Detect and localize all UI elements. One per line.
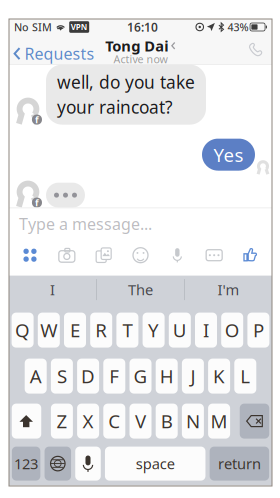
staticText: D	[81, 364, 95, 388]
button[interactable]: Stickers	[127, 242, 153, 268]
button[interactable]: Y	[143, 313, 165, 348]
button[interactable]: More options	[201, 242, 227, 268]
button[interactable]: Camera	[54, 242, 80, 268]
staticText: Active now	[113, 52, 167, 66]
staticText: B	[161, 409, 173, 433]
staticText: Z	[56, 409, 67, 433]
button[interactable]: Q	[12, 313, 34, 348]
button[interactable]: B	[156, 404, 178, 439]
staticText: S	[57, 364, 67, 388]
button[interactable]: I	[9, 276, 96, 304]
staticText: Requests	[24, 43, 94, 64]
button[interactable]: A	[25, 359, 47, 394]
staticText: The	[128, 280, 153, 299]
staticText: P	[253, 318, 264, 342]
button[interactable]: space	[105, 447, 205, 481]
staticText: G	[133, 364, 147, 388]
button[interactable]: Type a message...	[9, 208, 272, 239]
button[interactable]: Z	[51, 404, 73, 439]
button[interactable]: E	[64, 313, 86, 348]
button[interactable]: R	[90, 313, 112, 348]
staticText: I'm	[217, 280, 239, 299]
staticText: Y	[148, 318, 159, 342]
staticText: K	[213, 364, 225, 388]
staticText: M	[211, 409, 228, 433]
button[interactable]: L	[234, 359, 256, 394]
button[interactable]: Voice message	[164, 242, 190, 268]
staticText: N	[186, 409, 200, 433]
button[interactable]: K	[208, 359, 230, 394]
staticText: T	[122, 318, 132, 342]
button[interactable]: M	[208, 404, 230, 439]
button[interactable]: The	[97, 276, 184, 304]
button[interactable]: 123	[12, 447, 40, 481]
staticText: 123	[14, 454, 38, 473]
button[interactable]: D	[77, 359, 99, 394]
staticText: return	[218, 454, 261, 473]
button[interactable]: I	[195, 313, 217, 348]
staticText: Tong Dai	[105, 36, 168, 55]
staticText: I	[50, 280, 55, 299]
button[interactable]: N	[182, 404, 204, 439]
staticText: well, do you take	[57, 71, 195, 94]
button[interactable]: W	[38, 313, 60, 348]
button[interactable]: V	[129, 404, 151, 439]
staticText: L	[240, 364, 250, 388]
button[interactable]: Dictation	[75, 447, 101, 481]
button[interactable]: T	[116, 313, 138, 348]
staticText: Q	[15, 318, 30, 342]
staticText: W	[40, 318, 57, 342]
button[interactable]: Next keyboard	[44, 447, 71, 481]
staticText: Type a message...	[19, 213, 152, 234]
staticText: H	[160, 364, 174, 388]
button[interactable]: Call	[240, 35, 272, 64]
button[interactable]: H	[156, 359, 178, 394]
button[interactable]: Like	[238, 242, 264, 268]
button[interactable]: Shift	[12, 404, 41, 439]
button[interactable]: U	[169, 313, 191, 348]
staticText: f	[35, 196, 39, 209]
staticText: U	[173, 318, 187, 342]
button[interactable]: return	[210, 447, 269, 481]
staticText: No SIM	[14, 20, 52, 34]
staticText: X	[83, 409, 94, 433]
button[interactable]: S	[51, 359, 73, 394]
staticText: E	[70, 318, 80, 342]
staticText: your raincoat?	[57, 96, 173, 119]
staticText: O	[225, 318, 240, 342]
button[interactable]: G	[129, 359, 151, 394]
staticText: space	[136, 454, 175, 473]
staticText: Yes	[213, 142, 243, 167]
staticText: 16:10	[127, 19, 158, 35]
button[interactable]: X	[77, 404, 99, 439]
button[interactable]: C	[103, 404, 125, 439]
button[interactable]: I'm	[185, 276, 272, 304]
button[interactable]: Delete	[240, 404, 269, 439]
staticText: 43%	[227, 20, 248, 34]
staticText: V	[135, 409, 146, 433]
staticText: VPN	[71, 22, 88, 32]
button[interactable]: More	[17, 242, 43, 268]
staticText: f	[35, 113, 39, 126]
button[interactable]: F	[103, 359, 125, 394]
staticText: A	[30, 364, 42, 388]
staticText: C	[108, 409, 120, 433]
button[interactable]: Photos	[91, 242, 117, 268]
staticText: R	[95, 318, 107, 342]
button[interactable]: Tong Dai	[93, 34, 187, 65]
button[interactable]: P	[247, 313, 269, 348]
button[interactable]: J	[182, 359, 204, 394]
staticText: F	[109, 364, 119, 388]
staticText: J	[190, 364, 195, 388]
button[interactable]: O	[221, 313, 243, 348]
staticText: I	[203, 318, 209, 342]
button[interactable]: Requests	[9, 35, 100, 64]
